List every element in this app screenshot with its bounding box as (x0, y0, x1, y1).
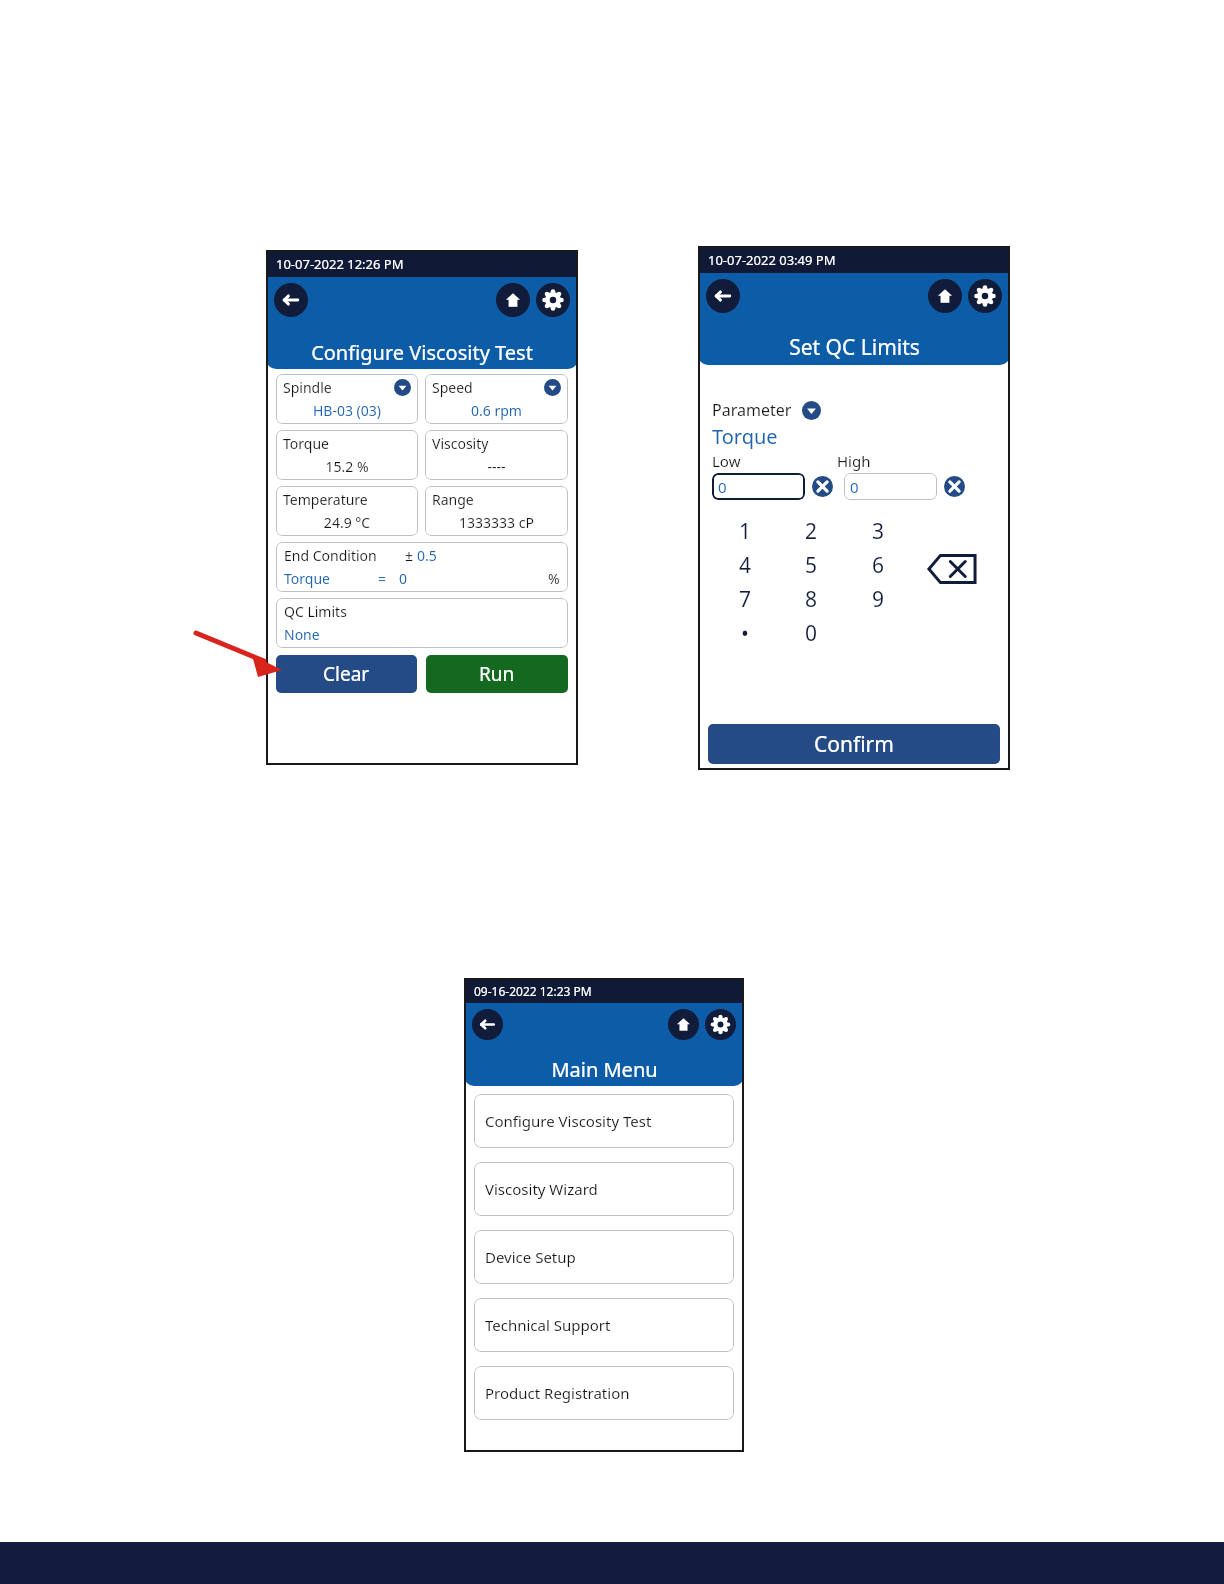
staticText: Torque (712, 423, 778, 450)
staticText: High (837, 451, 871, 471)
staticText: Configure Viscosity Test (485, 1111, 652, 1131)
staticText: 0 (805, 619, 818, 648)
staticText: Torque (283, 434, 329, 453)
button[interactable]: Product Registration (474, 1366, 734, 1420)
button[interactable]: End Condition (276, 542, 568, 592)
button[interactable]: 2 (778, 514, 845, 548)
button[interactable]: Configure Viscosity Test (474, 1094, 734, 1148)
staticText: Set QC Limits (789, 333, 920, 362)
staticText: Viscosity (432, 434, 489, 453)
button[interactable]: • (712, 616, 778, 650)
staticText: Clear (323, 661, 370, 687)
staticText: Configure Viscosity Test (311, 339, 533, 366)
staticText: Range (432, 490, 474, 509)
staticText: 8 (805, 585, 818, 614)
button[interactable]: Viscosity (425, 430, 568, 480)
button[interactable]: Back (706, 279, 740, 313)
staticText: 10-07-2022 03:49 PM (708, 251, 836, 269)
staticText: 6 (872, 551, 885, 580)
button[interactable]: Viscosity Wizard (474, 1162, 734, 1216)
button[interactable]: 5 (778, 548, 845, 582)
staticText: 5 (805, 551, 818, 580)
staticText: Speed (432, 378, 473, 397)
button[interactable]: 0 (712, 473, 805, 500)
button[interactable]: Back (274, 283, 308, 317)
button[interactable]: Home (928, 279, 962, 313)
staticText: Technical Support (485, 1315, 611, 1335)
button[interactable]: Range (425, 486, 568, 536)
button[interactable]: 9 (845, 582, 912, 616)
staticText: Low (712, 451, 837, 471)
button[interactable]: Clear (276, 655, 417, 693)
staticText: Temperature (283, 490, 368, 509)
button[interactable]: Home (496, 283, 530, 317)
staticText: 09-16-2022 12:23 PM (474, 983, 592, 999)
button[interactable]: 0 (844, 473, 937, 500)
button[interactable]: 8 (778, 582, 845, 616)
button[interactable]: Open list (394, 379, 411, 396)
staticText: 4 (739, 551, 752, 580)
button[interactable]: 1 (712, 514, 778, 548)
button[interactable]: Torque (276, 430, 418, 480)
staticText: QC Limits (284, 602, 347, 621)
button[interactable]: Speed (425, 374, 568, 424)
staticText: 9 (872, 585, 885, 614)
staticText: 24.9 °C (283, 513, 411, 532)
button[interactable]: Open list (802, 401, 821, 420)
staticText: 0 (718, 477, 727, 497)
staticText: Torque (284, 569, 330, 588)
staticText: % (548, 569, 560, 588)
button[interactable]: Confirm (708, 724, 1000, 764)
button[interactable]: Spindle (276, 374, 418, 424)
staticText: Parameter (712, 399, 792, 421)
button[interactable]: Settings (968, 279, 1002, 313)
button[interactable]: Back (472, 1009, 503, 1040)
staticText: 0 (850, 477, 859, 497)
staticText: ---- (432, 457, 561, 476)
staticText: 15.2 % (283, 457, 411, 476)
staticText: HB-03 (03) (283, 401, 411, 420)
staticText: 10-07-2022 12:26 PM (276, 255, 404, 273)
button[interactable]: Clear field (944, 476, 965, 497)
staticText: Viscosity Wizard (485, 1179, 598, 1199)
button[interactable]: Technical Support (474, 1298, 734, 1352)
staticText: End Condition (284, 546, 377, 565)
staticText: Confirm (814, 730, 894, 759)
staticText: Main Menu (551, 1056, 658, 1083)
button[interactable]: Home (668, 1009, 699, 1040)
staticText: 3 (872, 517, 885, 546)
staticText: Run (479, 661, 515, 687)
button[interactable]: 3 (845, 514, 912, 548)
staticText: 0.5 (417, 546, 437, 565)
button[interactable]: Backspace (928, 552, 976, 586)
staticText: Product Registration (485, 1383, 630, 1403)
button[interactable]: Open list (544, 379, 561, 396)
button[interactable]: Run (426, 655, 568, 693)
staticText: 2 (805, 517, 818, 546)
staticText: Device Setup (485, 1247, 576, 1267)
staticText: ± (405, 546, 414, 565)
staticText: None (284, 625, 320, 644)
staticText: 0.6 rpm (432, 401, 561, 420)
button[interactable]: 7 (712, 582, 778, 616)
staticText: 1333333 cP (432, 513, 561, 532)
button[interactable]: Temperature (276, 486, 418, 536)
button[interactable]: Settings (536, 283, 570, 317)
staticText: • (741, 619, 749, 648)
button[interactable]: Device Setup (474, 1230, 734, 1284)
staticText: = (378, 569, 387, 588)
button[interactable]: Settings (705, 1009, 736, 1040)
staticText: 0 (399, 569, 408, 588)
button[interactable]: QC Limits (276, 598, 568, 648)
button[interactable]: 4 (712, 548, 778, 582)
staticText: 7 (739, 585, 752, 614)
button[interactable]: 0 (778, 616, 845, 650)
button[interactable]: 6 (845, 548, 912, 582)
staticText: 1 (739, 517, 752, 546)
button[interactable]: Clear field (812, 476, 833, 497)
staticText: Spindle (283, 378, 332, 397)
